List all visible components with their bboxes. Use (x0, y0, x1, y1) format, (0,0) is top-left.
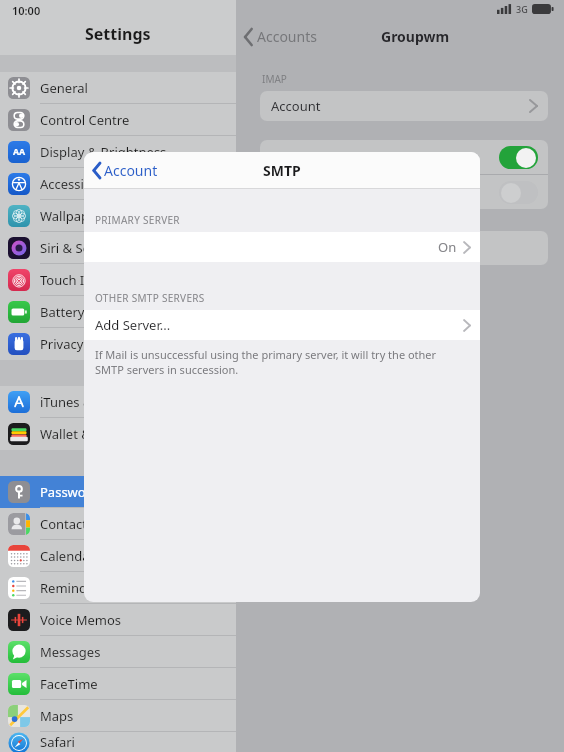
button[interactable]: Touch ID & Passcode (0, 264, 236, 296)
other: Enabled (499, 146, 538, 169)
staticText: Calendar (40, 547, 95, 565)
other: Disabled (499, 181, 538, 204)
staticText: Maps (40, 707, 74, 725)
staticText: Safari (40, 733, 75, 751)
button[interactable]: Enabled (260, 140, 548, 174)
button[interactable]: Wallpaper (0, 200, 236, 232)
button[interactable]: Safari (0, 732, 236, 752)
button[interactable]: Siri & Search (0, 232, 236, 264)
staticText: Passwords & Accounts (40, 483, 177, 501)
staticText: OTHER SMTP SERVERS (95, 291, 205, 305)
staticText: Voice Memos (40, 611, 122, 629)
button[interactable]: Account (260, 91, 548, 121)
button[interactable]: Accounts (236, 27, 323, 46)
staticText: AA (13, 146, 26, 158)
button[interactable]: Messages (0, 636, 236, 668)
button[interactable]: FaceTime (0, 668, 236, 700)
staticText: 3G (516, 3, 528, 15)
staticText: On (438, 238, 457, 256)
button[interactable]: Reminders (0, 572, 236, 604)
staticText: General (40, 79, 88, 97)
staticText: 10:00 (12, 3, 41, 18)
button[interactable]: General (0, 72, 236, 104)
button[interactable]: On (84, 232, 480, 262)
button[interactable]: Add Server... (84, 310, 480, 340)
staticText: Battery (40, 303, 85, 321)
staticText: Siri & Search (40, 239, 117, 257)
staticText: Add Server... (95, 316, 171, 334)
button[interactable]: Disabled (260, 175, 548, 209)
button[interactable]: Maps (0, 700, 236, 732)
staticText: Accounts (257, 27, 317, 46)
staticText: Reminders (40, 579, 106, 597)
staticText: Display & Brightness (40, 143, 167, 161)
staticText: SMTP (263, 161, 301, 180)
button[interactable]: Account (84, 157, 166, 184)
button[interactable]: Battery (0, 296, 236, 328)
staticText: Account (104, 161, 158, 180)
button[interactable]: Calendar (0, 540, 236, 572)
staticText: Control Centre (40, 111, 130, 129)
staticText: Privacy (40, 335, 84, 353)
button[interactable] (260, 231, 548, 265)
button[interactable]: Wallet & Apple Pay (0, 418, 236, 450)
staticText: Touch ID & Passcode (40, 271, 168, 289)
staticText: Groupwm (381, 27, 450, 46)
button[interactable]: Accessibility (0, 168, 236, 200)
staticText: IMAP (262, 72, 287, 86)
button[interactable]: Control Centre (0, 104, 236, 136)
staticText: Settings (85, 23, 151, 45)
staticText: Wallet & Apple Pay (40, 425, 155, 443)
staticText: Wallpaper (40, 207, 102, 225)
staticText: FaceTime (40, 675, 98, 693)
staticText: iTunes & App Store (40, 393, 156, 411)
staticText: Accessibility (40, 175, 114, 193)
button[interactable]: Passwords & Accounts (0, 476, 236, 508)
button[interactable]: Contacts (0, 508, 236, 540)
button[interactable]: Privacy (0, 328, 236, 360)
staticText: Contacts (40, 515, 94, 533)
button[interactable]: Voice Memos (0, 604, 236, 636)
staticText: Account (271, 97, 321, 115)
staticText: If Mail is unsuccessful using the primar… (95, 347, 466, 377)
staticText: Messages (40, 643, 101, 661)
button[interactable]: AA (0, 136, 236, 168)
button[interactable]: iTunes & App Store (0, 386, 236, 418)
staticText: PRIMARY SERVER (95, 213, 180, 227)
